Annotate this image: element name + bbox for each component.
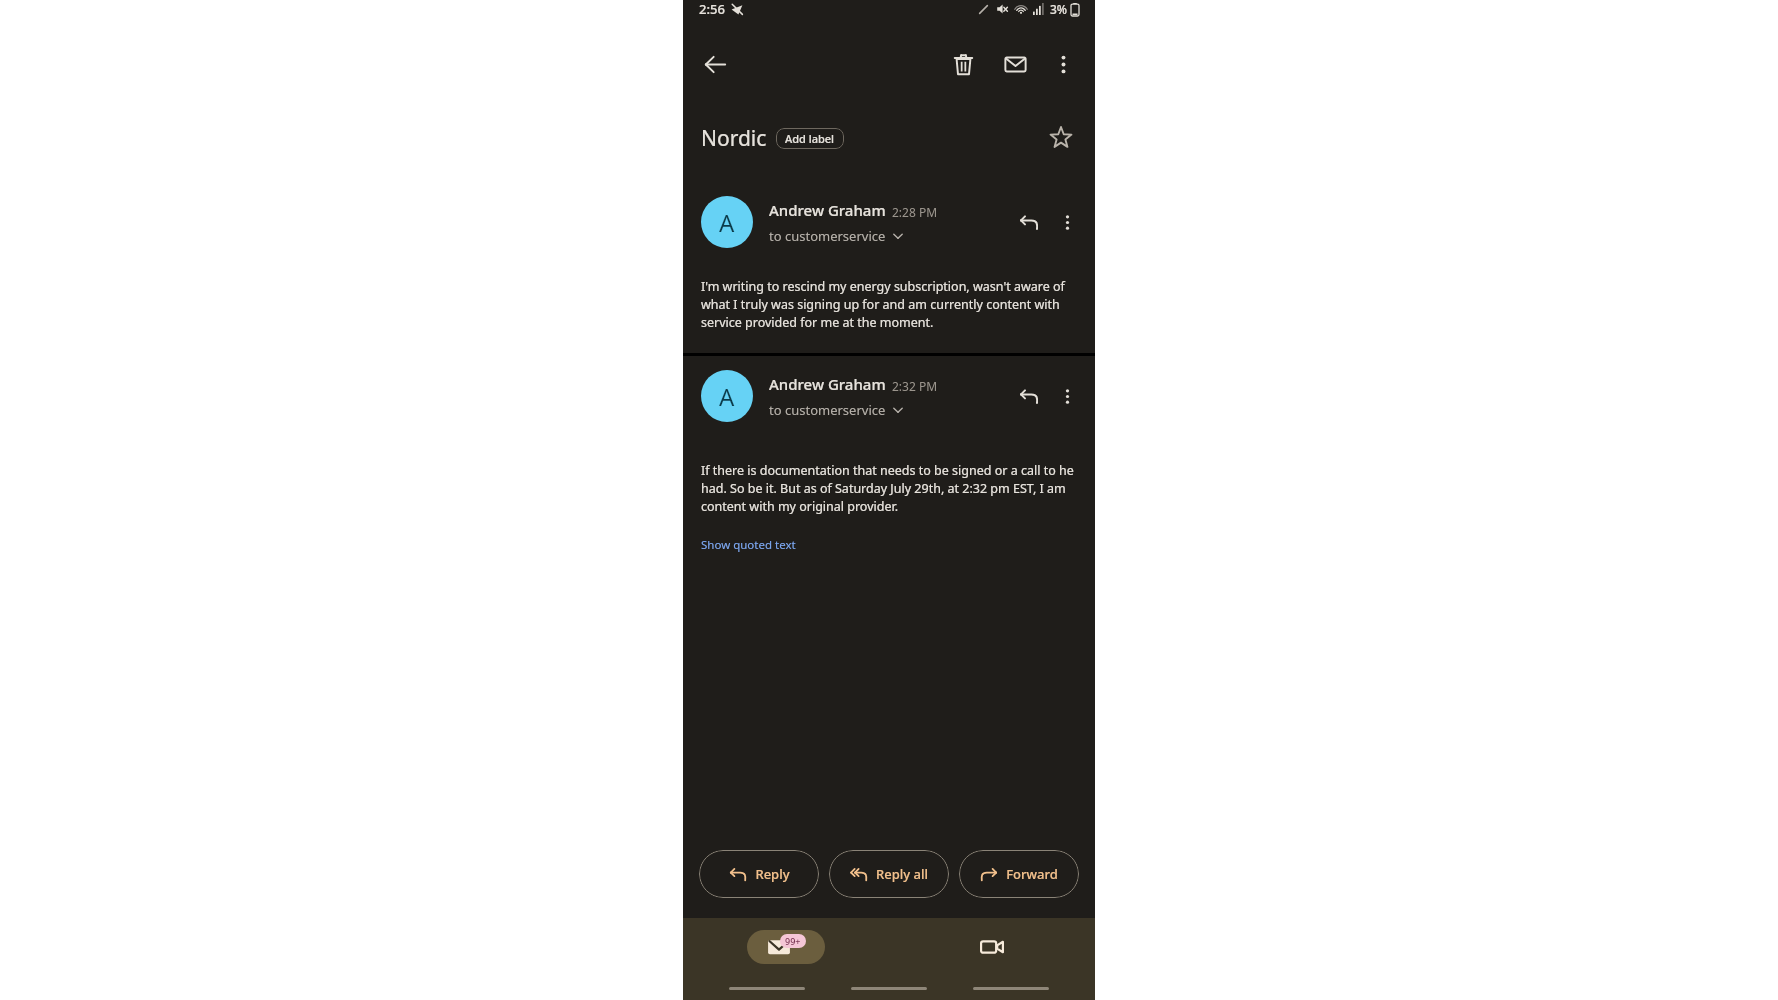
staticText: A [719, 380, 735, 413]
button[interactable]: Star [1039, 116, 1083, 160]
button[interactable]: More options [1049, 204, 1085, 240]
staticText: Reply [755, 865, 790, 883]
button[interactable]: Reply all [829, 850, 949, 898]
button[interactable]: Meet [953, 930, 1031, 964]
staticText: Add label [785, 131, 835, 146]
button[interactable]: More options [1041, 42, 1085, 86]
button[interactable]: Sender avatar [701, 370, 753, 422]
staticText: Reply all [876, 865, 928, 883]
staticText: I'm writing to rescind my energy subscri… [701, 278, 1077, 331]
button[interactable]: Mark unread [993, 42, 1037, 86]
staticText: to customerservice [769, 401, 886, 419]
button[interactable]: Sender avatar [701, 196, 753, 248]
button[interactable]: Mail [747, 930, 825, 964]
button[interactable]: Reply [699, 850, 819, 898]
staticText: 99+ [785, 935, 801, 947]
button[interactable]: Back [693, 42, 737, 86]
button[interactable]: Forward [959, 850, 1079, 898]
button[interactable]: More options [1049, 378, 1085, 414]
staticText: 3% [1050, 1, 1068, 17]
button[interactable]: Show quoted text [701, 537, 796, 553]
staticText: 2:32 PM [892, 378, 938, 394]
staticText: Andrew Graham [769, 200, 886, 220]
staticText: to customerservice [769, 227, 886, 245]
staticText: 2:28 PM [892, 204, 938, 220]
button[interactable]: Delete [941, 42, 985, 86]
staticText: Forward [1006, 865, 1058, 883]
staticText: 2:56 [699, 0, 725, 18]
button[interactable]: Reply [1009, 376, 1049, 416]
staticText: Andrew Graham [769, 374, 886, 394]
button[interactable]: Add label [776, 128, 844, 149]
staticText: Show quoted text [701, 537, 796, 553]
staticText: A [719, 206, 735, 239]
button[interactable]: Reply [1009, 202, 1049, 242]
staticText: If there is documentation that needs to … [701, 462, 1077, 515]
staticText: Nordic [701, 124, 767, 153]
